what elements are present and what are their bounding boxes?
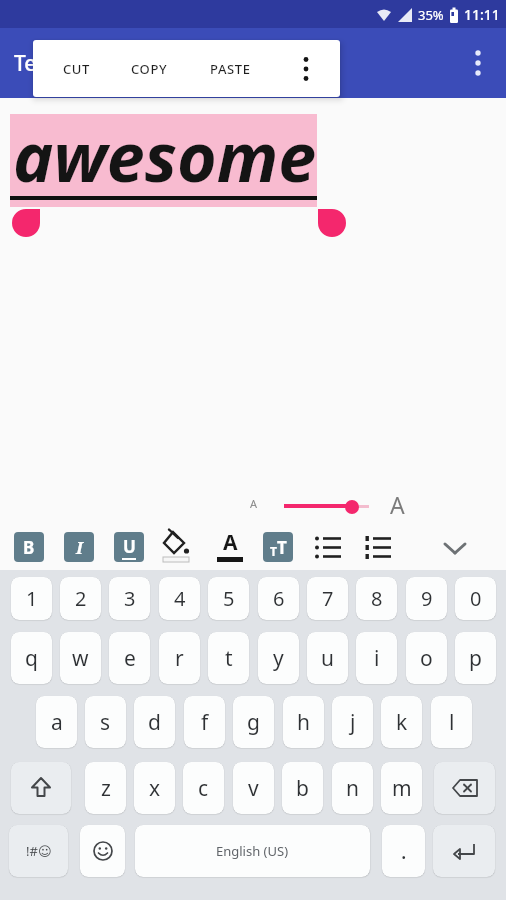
button[interactable]: o (406, 632, 447, 684)
button[interactable]: PASTE (199, 40, 261, 97)
button[interactable]: 9 (406, 577, 447, 620)
button[interactable]: CUT (51, 40, 101, 97)
staticText: r (175, 644, 184, 673)
button[interactable] (286, 49, 326, 89)
staticText: o (420, 644, 433, 673)
button[interactable] (363, 534, 395, 562)
button[interactable] (11, 762, 71, 814)
staticText: j (350, 708, 356, 737)
button[interactable]: b (282, 762, 323, 814)
staticText: Text Editor (14, 49, 122, 78)
staticText: h (297, 708, 310, 737)
staticText: 7 (322, 585, 334, 612)
button[interactable] (433, 825, 495, 877)
button[interactable]: 7 (307, 577, 348, 620)
button[interactable]: !#☺ (9, 825, 68, 877)
button[interactable]: u (307, 632, 348, 684)
button[interactable]: v (233, 762, 274, 814)
staticText: d (148, 708, 161, 737)
staticText: 8 (371, 585, 383, 612)
button[interactable]: COPY (121, 40, 177, 97)
button[interactable]: e (109, 632, 150, 684)
staticText: 9 (421, 585, 433, 612)
button[interactable]: 2 (60, 577, 101, 620)
staticText: 1 (26, 585, 38, 612)
button[interactable]: r (159, 632, 200, 684)
button[interactable]: g (233, 696, 274, 748)
staticText: w (72, 644, 89, 673)
staticText: 11:11 (464, 5, 500, 24)
button[interactable]: f (184, 696, 225, 748)
button[interactable]: 6 (258, 577, 299, 620)
button[interactable]: T (263, 532, 293, 562)
staticText: 5 (223, 585, 235, 612)
staticText: A (250, 496, 258, 511)
button[interactable]: 3 (109, 577, 150, 620)
button[interactable]: d (134, 696, 175, 748)
button[interactable]: s (85, 696, 126, 748)
staticText: a (51, 708, 63, 737)
button[interactable]: k (381, 696, 422, 748)
button[interactable] (160, 528, 194, 566)
button[interactable]: c (183, 762, 224, 814)
button[interactable]: l (431, 696, 472, 748)
button[interactable]: 8 (356, 577, 397, 620)
staticText: . (401, 838, 407, 865)
button[interactable]: 5 (208, 577, 249, 620)
button[interactable] (80, 825, 125, 877)
button[interactable]: i (356, 632, 397, 684)
button[interactable]: B (14, 532, 44, 562)
staticText: CUT (63, 60, 90, 78)
button[interactable]: z (85, 762, 126, 814)
button[interactable] (345, 500, 359, 514)
button[interactable]: t (208, 632, 249, 684)
staticText: p (469, 644, 482, 673)
staticText: awesome (13, 109, 317, 202)
button[interactable] (438, 536, 472, 560)
button[interactable]: h (283, 696, 324, 748)
staticText: n (346, 774, 359, 803)
staticText: !#☺ (26, 842, 52, 860)
button[interactable]: w (60, 632, 101, 684)
staticText: k (396, 708, 408, 737)
staticText: q (25, 644, 38, 673)
button[interactable]: q (11, 632, 52, 684)
button[interactable]: U (114, 532, 144, 562)
button[interactable]: y (258, 632, 299, 684)
staticText: i (374, 644, 380, 673)
staticText: PASTE (210, 60, 251, 78)
staticText: z (101, 774, 111, 803)
button[interactable]: English (US) (135, 825, 370, 877)
button[interactable]: m (381, 762, 422, 814)
staticText: f (201, 708, 209, 737)
button[interactable]: I (64, 532, 94, 562)
staticText: g (247, 708, 260, 737)
button[interactable]: x (134, 762, 175, 814)
staticText: I (76, 536, 83, 559)
staticText: T (277, 536, 287, 559)
button[interactable]: a (36, 696, 77, 748)
staticText: c (198, 774, 209, 803)
staticText: e (124, 644, 136, 673)
staticText: y (273, 644, 284, 673)
button[interactable]: 1 (11, 577, 52, 620)
staticText: v (248, 774, 259, 803)
staticText: 2 (75, 585, 87, 612)
button[interactable] (434, 762, 495, 814)
button[interactable]: p (455, 632, 496, 684)
staticText: B (23, 536, 35, 559)
button[interactable]: j (332, 696, 373, 748)
button[interactable]: . (382, 825, 425, 877)
button[interactable]: n (332, 762, 373, 814)
button[interactable] (460, 45, 496, 81)
button[interactable]: 4 (159, 577, 200, 620)
staticText: u (321, 644, 334, 673)
staticText: b (296, 774, 309, 803)
staticText: U (123, 535, 136, 558)
staticText: A (390, 489, 405, 520)
button[interactable]: A (213, 528, 247, 566)
button[interactable]: 0 (455, 577, 496, 620)
button[interactable] (313, 534, 345, 562)
staticText: A (223, 528, 238, 557)
staticText: 3 (124, 585, 136, 612)
